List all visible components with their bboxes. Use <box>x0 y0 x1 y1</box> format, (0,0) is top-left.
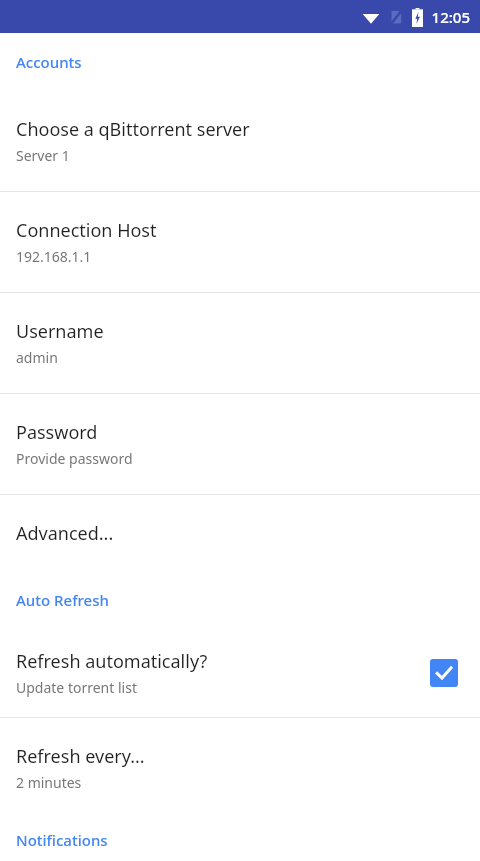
staticText: Advanced... <box>16 521 114 546</box>
staticText: Accounts <box>16 52 82 72</box>
staticText: Refresh every... <box>16 744 145 769</box>
staticText: Choose a qBittorrent server <box>16 117 250 142</box>
button[interactable]: Refresh automatically? <box>0 629 480 717</box>
button[interactable]: Refresh automatically toggle <box>424 653 464 693</box>
button[interactable]: Choose a qBittorrent server <box>0 91 480 191</box>
staticText: Notifications <box>16 830 108 850</box>
staticText: Connection Host <box>16 218 157 243</box>
staticText: 12:05 <box>431 7 470 27</box>
staticText: 192.168.1.1 <box>16 247 92 266</box>
button[interactable]: Connection Host <box>0 192 480 292</box>
staticText: Password <box>16 420 98 445</box>
button[interactable]: Refresh every... <box>0 718 480 818</box>
button[interactable]: Username <box>0 293 480 393</box>
button[interactable]: Advanced... <box>0 495 480 571</box>
staticText: Server 1 <box>16 146 70 165</box>
staticText: admin <box>16 348 58 367</box>
button[interactable]: Password <box>0 394 480 494</box>
staticText: Refresh automatically? <box>16 649 208 674</box>
staticText: Provide password <box>16 449 133 468</box>
staticText: 2 minutes <box>16 773 82 792</box>
staticText: Auto Refresh <box>16 590 109 610</box>
staticText: Username <box>16 319 104 344</box>
staticText: Update torrent list <box>16 678 137 697</box>
